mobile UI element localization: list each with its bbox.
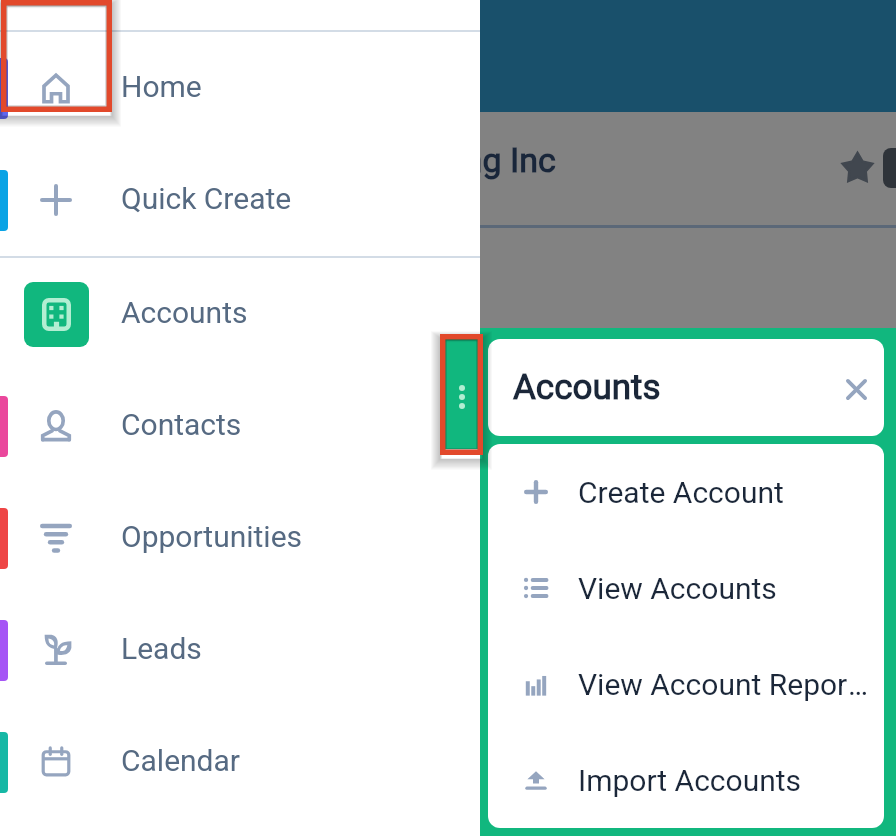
staticText: Quick Create [121,181,292,216]
staticText: Calendar [121,743,241,778]
button[interactable]: Import Accounts [488,732,884,828]
staticText: Import Accounts [578,763,802,798]
button[interactable]: Close panel [832,365,880,413]
button[interactable]: Home [0,32,480,144]
button[interactable]: Opportunities [0,482,480,594]
staticText: Accounts [513,367,661,408]
button[interactable]: Quick Create [0,144,480,256]
button[interactable]: Accounts [0,258,480,370]
staticText: View Account Reports [578,667,870,702]
button[interactable]: View Account Reports [488,636,884,732]
button[interactable]: Contacts [0,370,480,482]
button[interactable]: Create Account [488,444,884,540]
staticText: Accounts [121,295,248,330]
staticText: View Accounts [578,571,777,606]
staticText: Acme Holding Inc [288,140,556,180]
button[interactable]: Leads [0,594,480,706]
staticText: Opportunities [121,519,303,554]
button[interactable]: Favorite [842,153,873,184]
staticText: Create Account [578,475,784,510]
button[interactable]: More options [445,339,479,449]
staticText: Leads [121,631,202,666]
staticText: Home [121,69,202,104]
button[interactable]: View Accounts [488,540,884,636]
button[interactable]: Close navigation drawer [0,0,112,30]
staticText: Contacts [121,407,242,442]
button[interactable]: Calendar [0,706,480,818]
